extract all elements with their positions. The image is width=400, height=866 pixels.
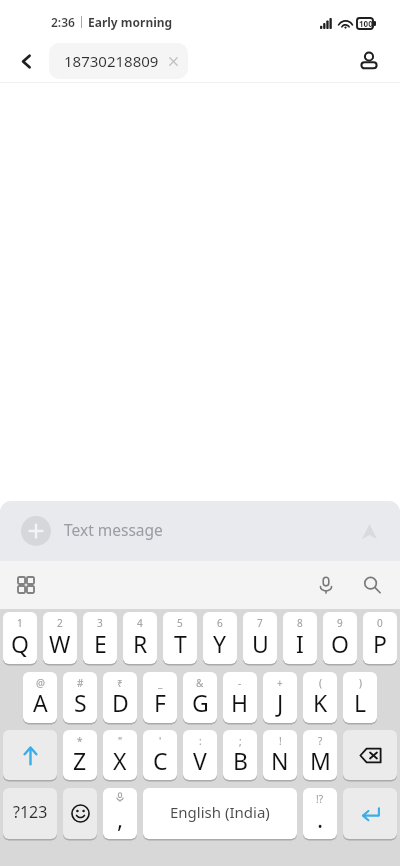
button[interactable]: 5 <box>163 612 197 664</box>
button[interactable]: Add attachment <box>21 516 51 546</box>
staticText: " <box>118 734 123 748</box>
staticText: K <box>313 687 328 718</box>
staticText: V <box>193 745 207 776</box>
button[interactable]: ₹ <box>103 672 137 723</box>
staticText: ?123 <box>13 801 48 823</box>
button[interactable]: ) <box>343 672 377 723</box>
staticText: Text message <box>64 519 163 540</box>
staticText: : <box>199 734 202 748</box>
staticText: S <box>74 687 87 718</box>
staticText: Y <box>213 628 227 659</box>
button[interactable]: 1 <box>3 612 37 664</box>
staticText: - <box>238 676 242 690</box>
button[interactable]: Emoji <box>63 788 97 839</box>
staticText: N <box>271 745 289 776</box>
button[interactable]: !? <box>303 788 337 839</box>
button[interactable]: @ <box>23 672 57 723</box>
staticText: + <box>277 676 283 690</box>
button[interactable]: , <box>103 788 137 839</box>
button[interactable]: # <box>63 672 97 723</box>
button[interactable]: 3 <box>83 612 117 664</box>
staticText: J <box>277 687 284 718</box>
staticText: ( <box>319 676 322 690</box>
staticText: R <box>133 628 148 659</box>
staticText: ! <box>279 734 282 748</box>
button[interactable]: Backspace <box>343 730 397 780</box>
button[interactable]: Apps <box>12 571 40 599</box>
staticText: ' <box>159 734 162 748</box>
button[interactable]: & <box>183 672 217 723</box>
staticText: 6 <box>217 616 223 630</box>
staticText: F <box>154 687 166 718</box>
button[interactable]: * <box>63 730 97 780</box>
staticText: & <box>196 676 204 690</box>
button[interactable]: Space <box>143 788 297 839</box>
button[interactable]: ; <box>223 730 257 780</box>
staticText: 7 <box>257 616 263 630</box>
staticText: _ <box>158 676 163 690</box>
staticText: G <box>192 687 209 718</box>
button[interactable]: + <box>263 672 297 723</box>
button[interactable]: 4 <box>123 612 157 664</box>
button[interactable]: 2 <box>43 612 77 664</box>
staticText: ? <box>318 734 323 748</box>
staticText: ; <box>239 734 242 748</box>
button[interactable]: 7 <box>243 612 277 664</box>
staticText: P <box>373 628 387 659</box>
staticText: Early morning <box>88 14 173 30</box>
staticText: M <box>310 745 331 776</box>
staticText: L <box>354 687 367 718</box>
button[interactable]: 18730218809 <box>49 43 188 79</box>
button[interactable]: Voice input <box>310 569 342 601</box>
staticText: 5 <box>177 616 183 630</box>
button[interactable]: ' <box>143 730 177 780</box>
staticText: C <box>153 745 168 776</box>
staticText: * <box>77 734 83 748</box>
staticText: O <box>331 628 349 659</box>
staticText: T <box>174 628 187 659</box>
button[interactable]: ! <box>263 730 297 780</box>
button[interactable]: 0 <box>363 612 397 664</box>
staticText: !? <box>316 792 324 806</box>
button[interactable]: " <box>103 730 137 780</box>
staticText: H <box>231 687 249 718</box>
staticText: 8 <box>297 616 303 630</box>
button[interactable]: - <box>223 672 257 723</box>
staticText: X <box>113 745 127 776</box>
staticText: Q <box>11 628 29 659</box>
staticText: ₹ <box>117 676 123 690</box>
button[interactable]: ? <box>303 730 337 780</box>
staticText: I <box>296 628 304 659</box>
staticText: English (India) <box>170 802 270 822</box>
button[interactable]: Shift <box>3 730 57 780</box>
button[interactable]: Search <box>356 569 388 601</box>
staticText: 0 <box>377 616 383 630</box>
staticText: 100 <box>359 18 373 29</box>
button[interactable]: 6 <box>203 612 237 664</box>
staticText: 3 <box>97 616 103 630</box>
button[interactable]: ( <box>303 672 337 723</box>
staticText: W <box>49 628 71 659</box>
button[interactable]: Contact info <box>354 46 384 76</box>
staticText: U <box>252 628 269 659</box>
staticText: ) <box>359 676 362 690</box>
button[interactable]: : <box>183 730 217 780</box>
button[interactable]: Send <box>355 517 383 545</box>
button[interactable]: Symbols <box>3 788 57 839</box>
staticText: @ <box>36 676 45 690</box>
staticText: 2 <box>57 616 63 630</box>
staticText: A <box>33 687 48 718</box>
staticText: E <box>94 628 107 659</box>
staticText: . <box>317 803 324 834</box>
staticText: D <box>112 687 129 718</box>
staticText: 1 <box>17 616 23 630</box>
button[interactable]: Back <box>12 47 40 75</box>
staticText: B <box>233 745 248 776</box>
staticText: Z <box>73 745 87 776</box>
button[interactable]: 9 <box>323 612 357 664</box>
button[interactable]: _ <box>143 672 177 723</box>
staticText: # <box>77 676 84 690</box>
button[interactable]: 8 <box>283 612 317 664</box>
button[interactable]: Enter <box>343 788 397 839</box>
staticText: 4 <box>137 616 143 630</box>
